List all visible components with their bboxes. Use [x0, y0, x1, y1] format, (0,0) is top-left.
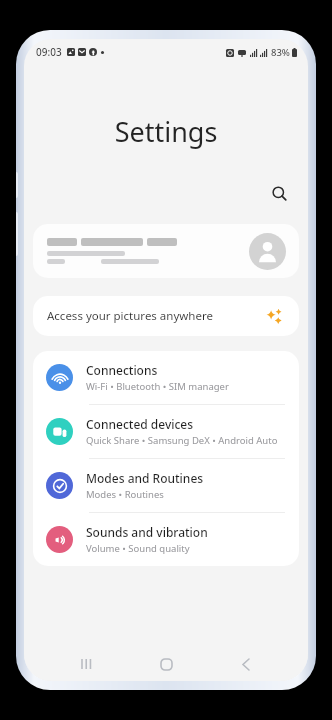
staticText: Sounds and vibration — [86, 524, 208, 540]
button[interactable]: Connected devices — [33, 405, 299, 458]
staticText: Access your pictures anywhere — [47, 308, 213, 324]
staticText: 83% — [271, 46, 290, 59]
staticText: Connected devices — [86, 416, 194, 432]
staticText: Modes • Routines — [86, 488, 164, 501]
staticText: Modes and Routines — [86, 470, 204, 486]
button[interactable]: Recent apps — [71, 649, 101, 679]
button[interactable]: Modes and Routines — [33, 459, 299, 512]
staticText: Wi-Fi • Bluetooth • SIM manager — [86, 380, 229, 393]
staticText: Quick Share • Samsung DeX • Android Auto — [86, 434, 278, 447]
staticText: 09:03 — [36, 45, 62, 59]
button[interactable]: Connections — [33, 351, 299, 404]
staticText: Connections — [86, 362, 158, 378]
staticText: Volume • Sound quality — [86, 542, 190, 555]
button[interactable]: Access your pictures anywhere — [33, 296, 299, 336]
button[interactable]: Sounds and vibration — [33, 513, 299, 566]
button[interactable]: Back — [231, 649, 261, 679]
button[interactable] — [33, 224, 299, 278]
button[interactable]: Home — [151, 649, 181, 679]
button[interactable]: Search settings — [262, 176, 296, 210]
staticText: Settings — [24, 113, 308, 150]
